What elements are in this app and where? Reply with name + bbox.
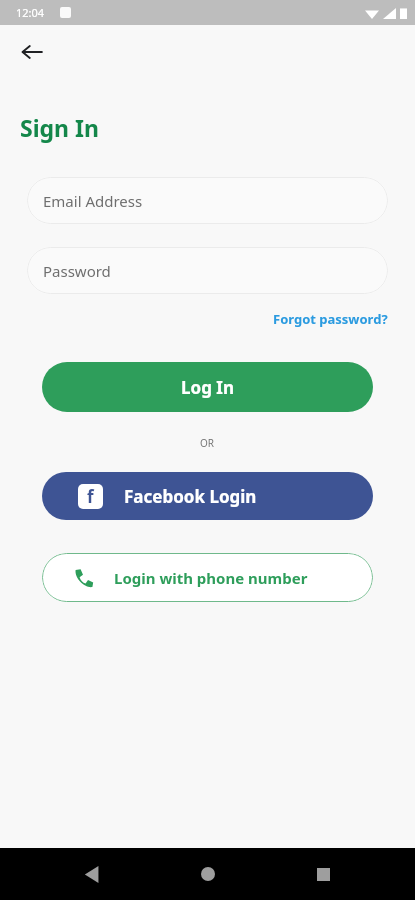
button[interactable]: Home bbox=[184, 850, 232, 898]
staticText: f bbox=[87, 485, 94, 508]
button[interactable]: Log In bbox=[42, 362, 373, 412]
staticText: Forgot password? bbox=[273, 310, 388, 328]
button[interactable]: Login with phone number bbox=[42, 553, 373, 602]
staticText: Password bbox=[43, 261, 111, 281]
button[interactable]: f bbox=[42, 472, 373, 520]
staticText: Facebook Login bbox=[124, 485, 257, 508]
staticText: Email Address bbox=[43, 191, 143, 211]
button[interactable]: Forgot password? bbox=[271, 307, 390, 331]
staticText: OR bbox=[200, 436, 215, 450]
button[interactable]: Password bbox=[27, 247, 388, 294]
staticText: 12:04 bbox=[16, 5, 45, 20]
staticText: Sign In bbox=[20, 112, 99, 143]
button[interactable]: Back bbox=[68, 850, 116, 898]
staticText: Log In bbox=[181, 376, 234, 399]
button[interactable]: Back bbox=[12, 32, 52, 72]
staticText: Login with phone number bbox=[114, 568, 308, 588]
button[interactable]: Email Address bbox=[27, 177, 388, 224]
button[interactable]: Recent apps bbox=[299, 850, 347, 898]
